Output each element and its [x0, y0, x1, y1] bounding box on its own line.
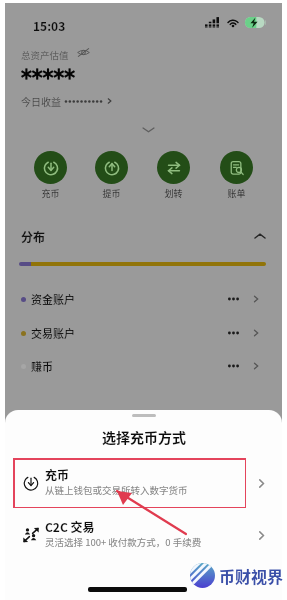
staticText: 划转: [164, 187, 183, 200]
button[interactable]: 分布: [5, 225, 282, 247]
button[interactable]: 今日收益: [21, 94, 112, 108]
staticText: 充币: [45, 466, 70, 483]
staticText: 币财视界: [219, 564, 284, 587]
staticText: 今日收益: [21, 94, 61, 108]
button[interactable]: C2C 交易: [5, 512, 282, 558]
staticText: C2C 交易: [45, 518, 95, 535]
button[interactable]: 划转: [156, 151, 190, 200]
button[interactable]: Collapse: [136, 123, 160, 137]
staticText: 资金账户: [31, 291, 75, 307]
staticText: 选择充币方式: [102, 427, 186, 447]
button[interactable]: 资金账户: [5, 289, 282, 309]
button[interactable]: 充币: [33, 151, 67, 200]
staticText: 15:03: [33, 17, 66, 34]
button[interactable]: 提币: [94, 151, 128, 200]
staticText: 总资产估值: [21, 48, 69, 62]
staticText: 充币: [41, 187, 60, 200]
staticText: 提币: [102, 187, 121, 200]
staticText: 账单: [227, 187, 246, 200]
button[interactable]: Hide balance: [77, 47, 90, 58]
staticText: 交易账户: [31, 325, 75, 341]
staticText: 灵活选择 100+ 收付款方式，0 手续费: [45, 535, 202, 549]
button[interactable]: 账单: [219, 151, 253, 200]
button[interactable]: 交易账户: [5, 323, 282, 343]
button[interactable]: 充币: [5, 460, 282, 506]
staticText: 从链上钱包或交易所转入数字货币: [45, 483, 188, 497]
button[interactable]: 赚币: [5, 356, 282, 376]
staticText: 赚币: [31, 358, 53, 374]
staticText: 分布: [21, 228, 46, 245]
